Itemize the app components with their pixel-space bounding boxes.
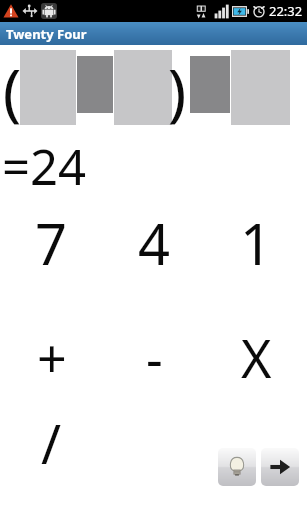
button[interactable]: / — [0, 403, 103, 483]
staticText: X — [241, 322, 272, 393]
staticText: 22:32 — [269, 2, 303, 20]
staticText: =24 — [2, 133, 87, 200]
staticText: ( — [2, 48, 22, 132]
button[interactable] — [114, 50, 172, 125]
staticText: ) — [167, 48, 187, 132]
button[interactable]: + — [0, 317, 103, 397]
staticText: / — [41, 406, 62, 480]
button[interactable]: - — [103, 317, 205, 397]
staticText: + — [37, 322, 67, 393]
button[interactable]: Next — [261, 448, 299, 486]
button[interactable]: 7 — [0, 203, 103, 283]
button[interactable]: X — [205, 317, 307, 397]
button[interactable]: Hint — [218, 448, 256, 486]
staticText: 1 — [240, 205, 273, 281]
staticText: Twenty Four — [6, 25, 87, 43]
button[interactable]: 1 — [205, 203, 307, 283]
staticText: 4 — [138, 205, 171, 281]
staticText: 7 — [35, 205, 68, 281]
button[interactable]: 4 — [103, 203, 205, 283]
staticText: - — [146, 322, 163, 393]
